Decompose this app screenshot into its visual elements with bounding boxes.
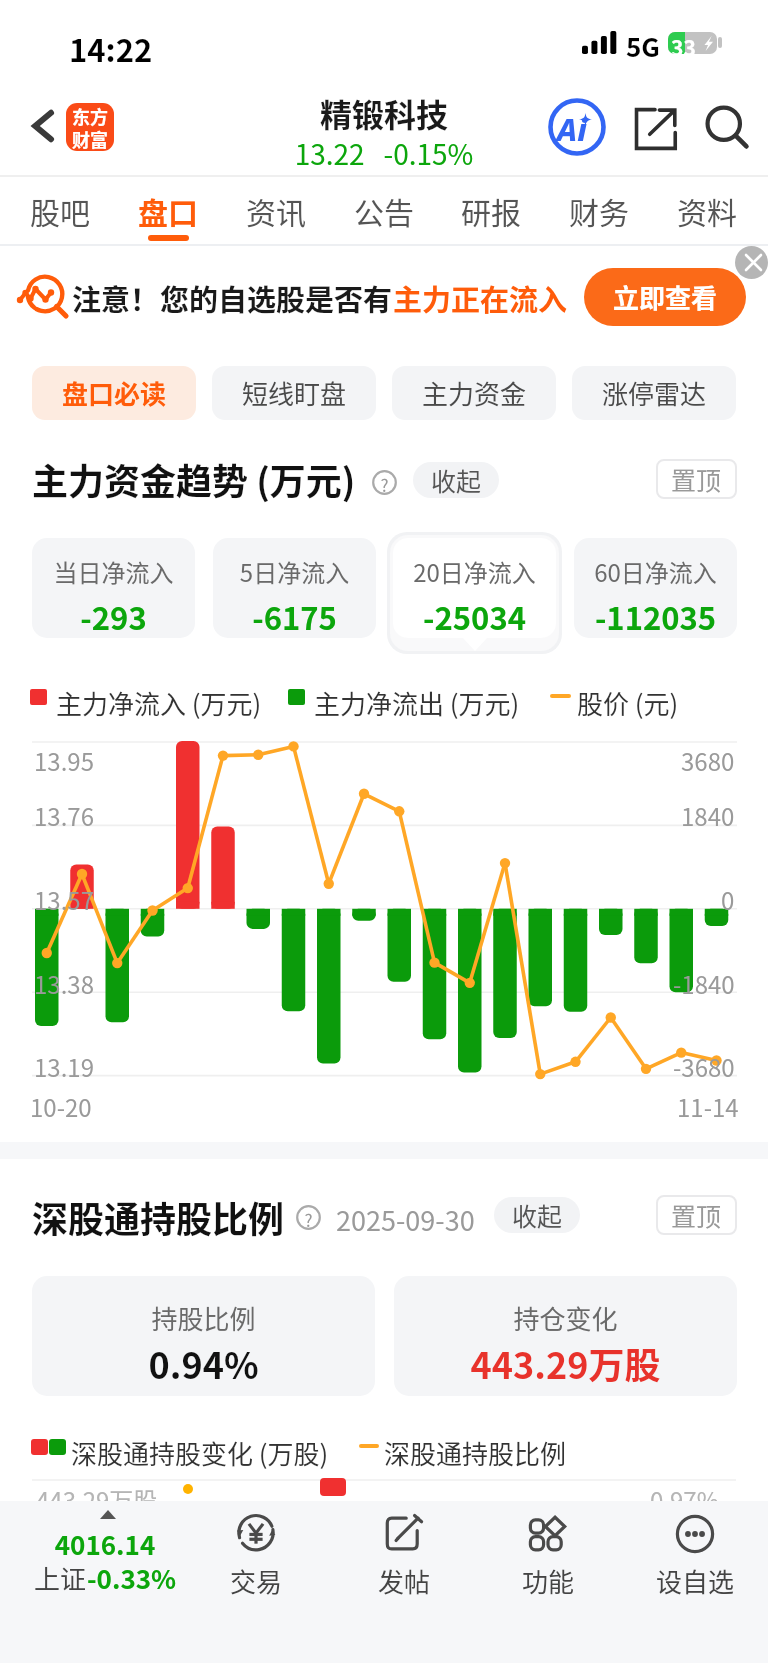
staticText: 20日净流入 (393, 554, 556, 589)
button[interactable]: 置顶 (656, 1195, 737, 1235)
staticText: 您的自选股是否有 (160, 277, 393, 319)
staticText: 公告 (336, 189, 432, 232)
staticText: 0.97% (650, 1482, 719, 1512)
button[interactable]: 资讯 (228, 178, 324, 244)
staticText: -1840 (673, 966, 735, 1001)
staticText: 深股通持股比例 (32, 1191, 285, 1243)
staticText: 1840 (681, 798, 735, 833)
button[interactable]: 交易 (196, 1505, 316, 1605)
staticText: 4016.14 (30, 1525, 180, 1563)
staticText: 5G (626, 27, 660, 65)
staticText: ? (372, 472, 397, 497)
button[interactable]: 60日净流入 (574, 538, 737, 638)
staticText: 研报 (443, 189, 539, 232)
staticText: 主力资金趋势 (万元) (32, 453, 356, 505)
staticText: 0 (721, 882, 735, 917)
button[interactable]: Search (700, 100, 754, 154)
button[interactable]: 4016.14 (30, 1501, 180, 1611)
staticText: -6175 (213, 594, 376, 638)
staticText: 13.57 (34, 882, 94, 917)
button[interactable]: 涨停雷达 (572, 366, 736, 420)
button[interactable]: Help (296, 1205, 321, 1230)
staticText: 13.22 -0.15% (254, 133, 514, 174)
button[interactable]: Back (22, 104, 66, 148)
staticText: 13.95 (34, 743, 94, 778)
staticText: 60日净流入 (574, 554, 737, 589)
staticText: 主力净流入 (万元) (56, 684, 262, 722)
staticText: 涨停雷达 (602, 374, 707, 412)
staticText: 盘口必读 (62, 374, 167, 412)
staticText: 股价 (元) (577, 684, 679, 722)
button[interactable]: 发帖 (344, 1505, 464, 1605)
staticText: 资料 (659, 189, 755, 232)
button[interactable]: 收起 (494, 1197, 580, 1233)
button[interactable]: East Money (66, 103, 114, 151)
button[interactable]: 收起 (413, 462, 499, 498)
staticText: 深股通持股比例 (384, 1434, 567, 1472)
staticText: 上证 (34, 1559, 87, 1597)
staticText: 置顶 (671, 461, 722, 497)
staticText: 0.94% (32, 1337, 375, 1389)
button[interactable]: 盘口必读 (32, 366, 196, 420)
button[interactable]: 短线盯盘 (212, 366, 376, 420)
staticText: 交易 (196, 1562, 316, 1600)
button[interactable]: 盘口 (120, 178, 216, 244)
button[interactable]: 5日净流入 (213, 538, 376, 638)
button[interactable]: 主力资金 (392, 366, 556, 420)
staticText: 主力资金 (422, 374, 527, 412)
staticText: 立即查看 (613, 278, 718, 316)
button[interactable]: Help (372, 470, 397, 495)
button[interactable]: 公告 (336, 178, 432, 244)
staticText: 5日净流入 (213, 554, 376, 589)
staticText: 当日净流入 (32, 554, 195, 589)
staticText: 盘口 (120, 189, 216, 232)
button[interactable]: 持股比例 (32, 1276, 375, 1396)
staticText: 置顶 (671, 1197, 722, 1233)
staticText: 主力净流出 (万元) (314, 684, 520, 722)
staticText: 收起 (512, 1197, 563, 1233)
button[interactable]: 持仓变化 (394, 1276, 737, 1396)
staticText: 股吧 (12, 189, 108, 232)
staticText: -0.33% (87, 1559, 177, 1597)
staticText: 设自选 (635, 1562, 755, 1600)
button[interactable]: 当日净流入 (32, 538, 195, 638)
button[interactable]: 资料 (659, 178, 755, 244)
button[interactable]: 设自选 (635, 1505, 755, 1605)
button[interactable]: 立即查看 (584, 268, 746, 326)
staticText: 注意！ (72, 277, 160, 319)
staticText: 资讯 (228, 189, 324, 232)
staticText: 11-14 (677, 1089, 739, 1124)
button[interactable]: 研报 (443, 178, 539, 244)
staticText: 13.76 (34, 798, 94, 833)
staticText: 3680 (681, 743, 735, 778)
staticText: 精锻科技 (254, 90, 514, 136)
staticText: 13.19 (34, 1049, 94, 1084)
staticText: 443.29万股 (36, 1482, 158, 1512)
staticText: 2025-09-30 (336, 1200, 475, 1239)
staticText: 10-20 (30, 1089, 92, 1124)
staticText: 收起 (431, 462, 482, 498)
button[interactable]: 功能 (488, 1505, 608, 1605)
staticText: 功能 (488, 1562, 608, 1600)
button[interactable]: 财务 (551, 178, 647, 244)
staticText: -112035 (574, 594, 737, 638)
staticText: 443.29万股 (394, 1337, 737, 1389)
staticText: 主力正在流入 (393, 277, 568, 319)
button[interactable]: 置顶 (656, 459, 737, 499)
staticText: -293 (32, 594, 195, 638)
button[interactable]: 20日净流入 (393, 538, 556, 638)
button[interactable]: 股吧 (12, 178, 108, 244)
staticText: 短线盯盘 (242, 374, 347, 412)
staticText: 发帖 (344, 1562, 464, 1600)
button[interactable]: Share (633, 107, 677, 151)
staticText: 持仓变化 (394, 1299, 737, 1337)
staticText: -25034 (393, 594, 556, 638)
button[interactable]: Close (735, 246, 768, 279)
staticText: 33 (671, 32, 696, 54)
staticText: 财务 (551, 189, 647, 232)
staticText: Ai (557, 108, 587, 150)
staticText: 财富 (72, 126, 108, 151)
button[interactable]: AI assistant (548, 98, 606, 156)
staticText: 13.38 (34, 966, 94, 1001)
staticText: -3680 (673, 1049, 735, 1084)
